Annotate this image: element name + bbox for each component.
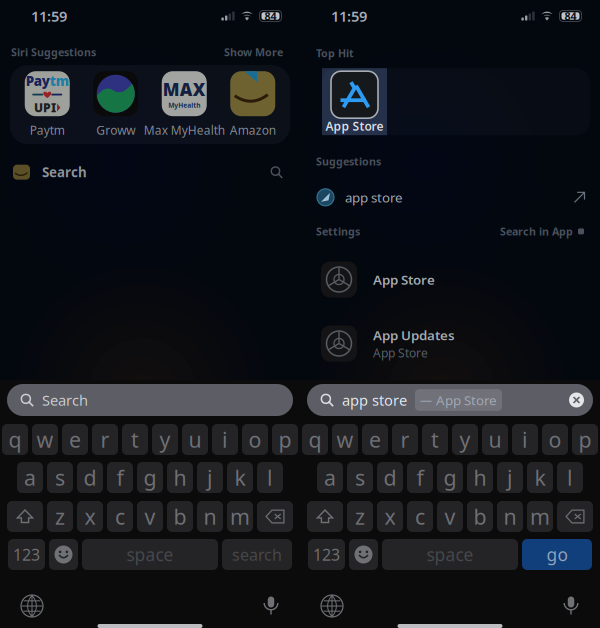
button[interactable]: Show More bbox=[224, 45, 283, 59]
button[interactable]: b bbox=[467, 501, 493, 532]
button[interactable]: MAX bbox=[150, 71, 218, 138]
button[interactable]: Search in App bbox=[500, 224, 584, 238]
button[interactable]: p bbox=[572, 424, 598, 455]
staticText: e bbox=[69, 425, 81, 454]
button[interactable]: w bbox=[332, 424, 358, 455]
button[interactable]: Dictate bbox=[263, 595, 279, 617]
button[interactable]: Clear text bbox=[569, 392, 584, 407]
button[interactable]: e bbox=[362, 424, 388, 455]
button[interactable]: v bbox=[137, 501, 163, 532]
button[interactable]: s bbox=[47, 462, 73, 493]
button[interactable]: Delete bbox=[257, 501, 293, 532]
button[interactable]: r bbox=[392, 424, 418, 455]
button[interactable]: search bbox=[222, 539, 292, 570]
button[interactable]: y bbox=[452, 424, 478, 455]
staticText: b bbox=[173, 502, 186, 531]
staticText: Siri Suggestions bbox=[11, 45, 96, 59]
staticText: space bbox=[126, 543, 173, 566]
button[interactable]: space bbox=[82, 539, 218, 570]
button[interactable]: Search bbox=[0, 144, 300, 193]
button[interactable]: k bbox=[527, 462, 553, 493]
button[interactable]: p bbox=[272, 424, 298, 455]
staticText: y bbox=[459, 425, 470, 454]
button[interactable]: go bbox=[522, 539, 592, 570]
staticText: g bbox=[443, 463, 456, 492]
staticText: j bbox=[207, 463, 213, 492]
button[interactable]: i bbox=[212, 424, 238, 455]
staticText: Settings bbox=[316, 224, 360, 238]
button[interactable]: app store bbox=[300, 168, 600, 212]
staticText: MAX bbox=[163, 78, 206, 101]
button[interactable]: Shift bbox=[7, 501, 43, 532]
button[interactable]: c bbox=[407, 501, 433, 532]
button[interactable]: h bbox=[467, 462, 493, 493]
button[interactable]: Emoji bbox=[349, 539, 378, 570]
button[interactable]: m bbox=[227, 501, 253, 532]
button[interactable]: o bbox=[242, 424, 268, 455]
button[interactable]: z bbox=[47, 501, 73, 532]
button[interactable]: t bbox=[422, 424, 448, 455]
button[interactable]: u bbox=[182, 424, 208, 455]
button[interactable]: r bbox=[92, 424, 118, 455]
button[interactable]: b bbox=[167, 501, 193, 532]
button[interactable]: Change keyboard bbox=[21, 595, 43, 617]
button[interactable]: q bbox=[302, 424, 328, 455]
button[interactable]: j bbox=[197, 462, 223, 493]
button[interactable]: 123 bbox=[8, 539, 45, 570]
button[interactable]: g bbox=[137, 462, 163, 493]
button[interactable]: z bbox=[347, 501, 373, 532]
button[interactable]: n bbox=[197, 501, 223, 532]
button[interactable]: space bbox=[382, 539, 518, 570]
button[interactable]: u bbox=[482, 424, 508, 455]
button[interactable]: Dictate bbox=[563, 595, 579, 617]
button[interactable]: m bbox=[527, 501, 553, 532]
button[interactable]: x bbox=[77, 501, 103, 532]
button[interactable]: f bbox=[107, 462, 133, 493]
button[interactable]: App Store bbox=[322, 68, 387, 135]
button[interactable]: f bbox=[407, 462, 433, 493]
staticText: Search bbox=[42, 163, 87, 181]
staticText: f bbox=[416, 463, 423, 492]
button[interactable]: c bbox=[107, 501, 133, 532]
button[interactable]: Delete bbox=[557, 501, 593, 532]
button[interactable]: Emoji bbox=[49, 539, 78, 570]
button[interactable]: 123 bbox=[308, 539, 345, 570]
button[interactable]: w bbox=[32, 424, 58, 455]
staticText: z bbox=[355, 502, 365, 531]
button[interactable]: n bbox=[497, 501, 523, 532]
button[interactable]: h bbox=[167, 462, 193, 493]
button[interactable]: q bbox=[2, 424, 28, 455]
button[interactable]: e bbox=[62, 424, 88, 455]
button[interactable]: Change keyboard bbox=[321, 595, 343, 617]
staticText: n bbox=[503, 502, 516, 531]
button[interactable]: App Updates bbox=[300, 311, 600, 375]
button[interactable]: g bbox=[437, 462, 463, 493]
button[interactable]: j bbox=[497, 462, 523, 493]
staticText: o bbox=[548, 425, 561, 454]
button[interactable]: y bbox=[152, 424, 178, 455]
staticText: a bbox=[324, 463, 336, 492]
button[interactable]: s bbox=[347, 462, 373, 493]
button[interactable]: Groww bbox=[81, 71, 150, 138]
button[interactable]: App Store bbox=[300, 239, 600, 311]
button[interactable]: i bbox=[512, 424, 538, 455]
button[interactable]: x bbox=[377, 501, 403, 532]
button[interactable]: Pay bbox=[13, 71, 81, 138]
button[interactable]: o bbox=[542, 424, 568, 455]
staticText: 84 bbox=[564, 9, 576, 23]
staticText: 11:59 bbox=[31, 6, 67, 26]
button[interactable]: a bbox=[317, 462, 343, 493]
button[interactable]: d bbox=[377, 462, 403, 493]
staticText: a bbox=[24, 463, 36, 492]
button[interactable]: d bbox=[77, 462, 103, 493]
button[interactable]: a bbox=[17, 462, 43, 493]
staticText: s bbox=[55, 463, 65, 492]
button[interactable]: t bbox=[122, 424, 148, 455]
button[interactable]: Amazon bbox=[218, 71, 287, 138]
staticText: m bbox=[230, 502, 250, 531]
button[interactable]: l bbox=[257, 462, 283, 493]
button[interactable]: Shift bbox=[307, 501, 343, 532]
button[interactable]: v bbox=[437, 501, 463, 532]
button[interactable]: k bbox=[227, 462, 253, 493]
button[interactable]: l bbox=[557, 462, 583, 493]
